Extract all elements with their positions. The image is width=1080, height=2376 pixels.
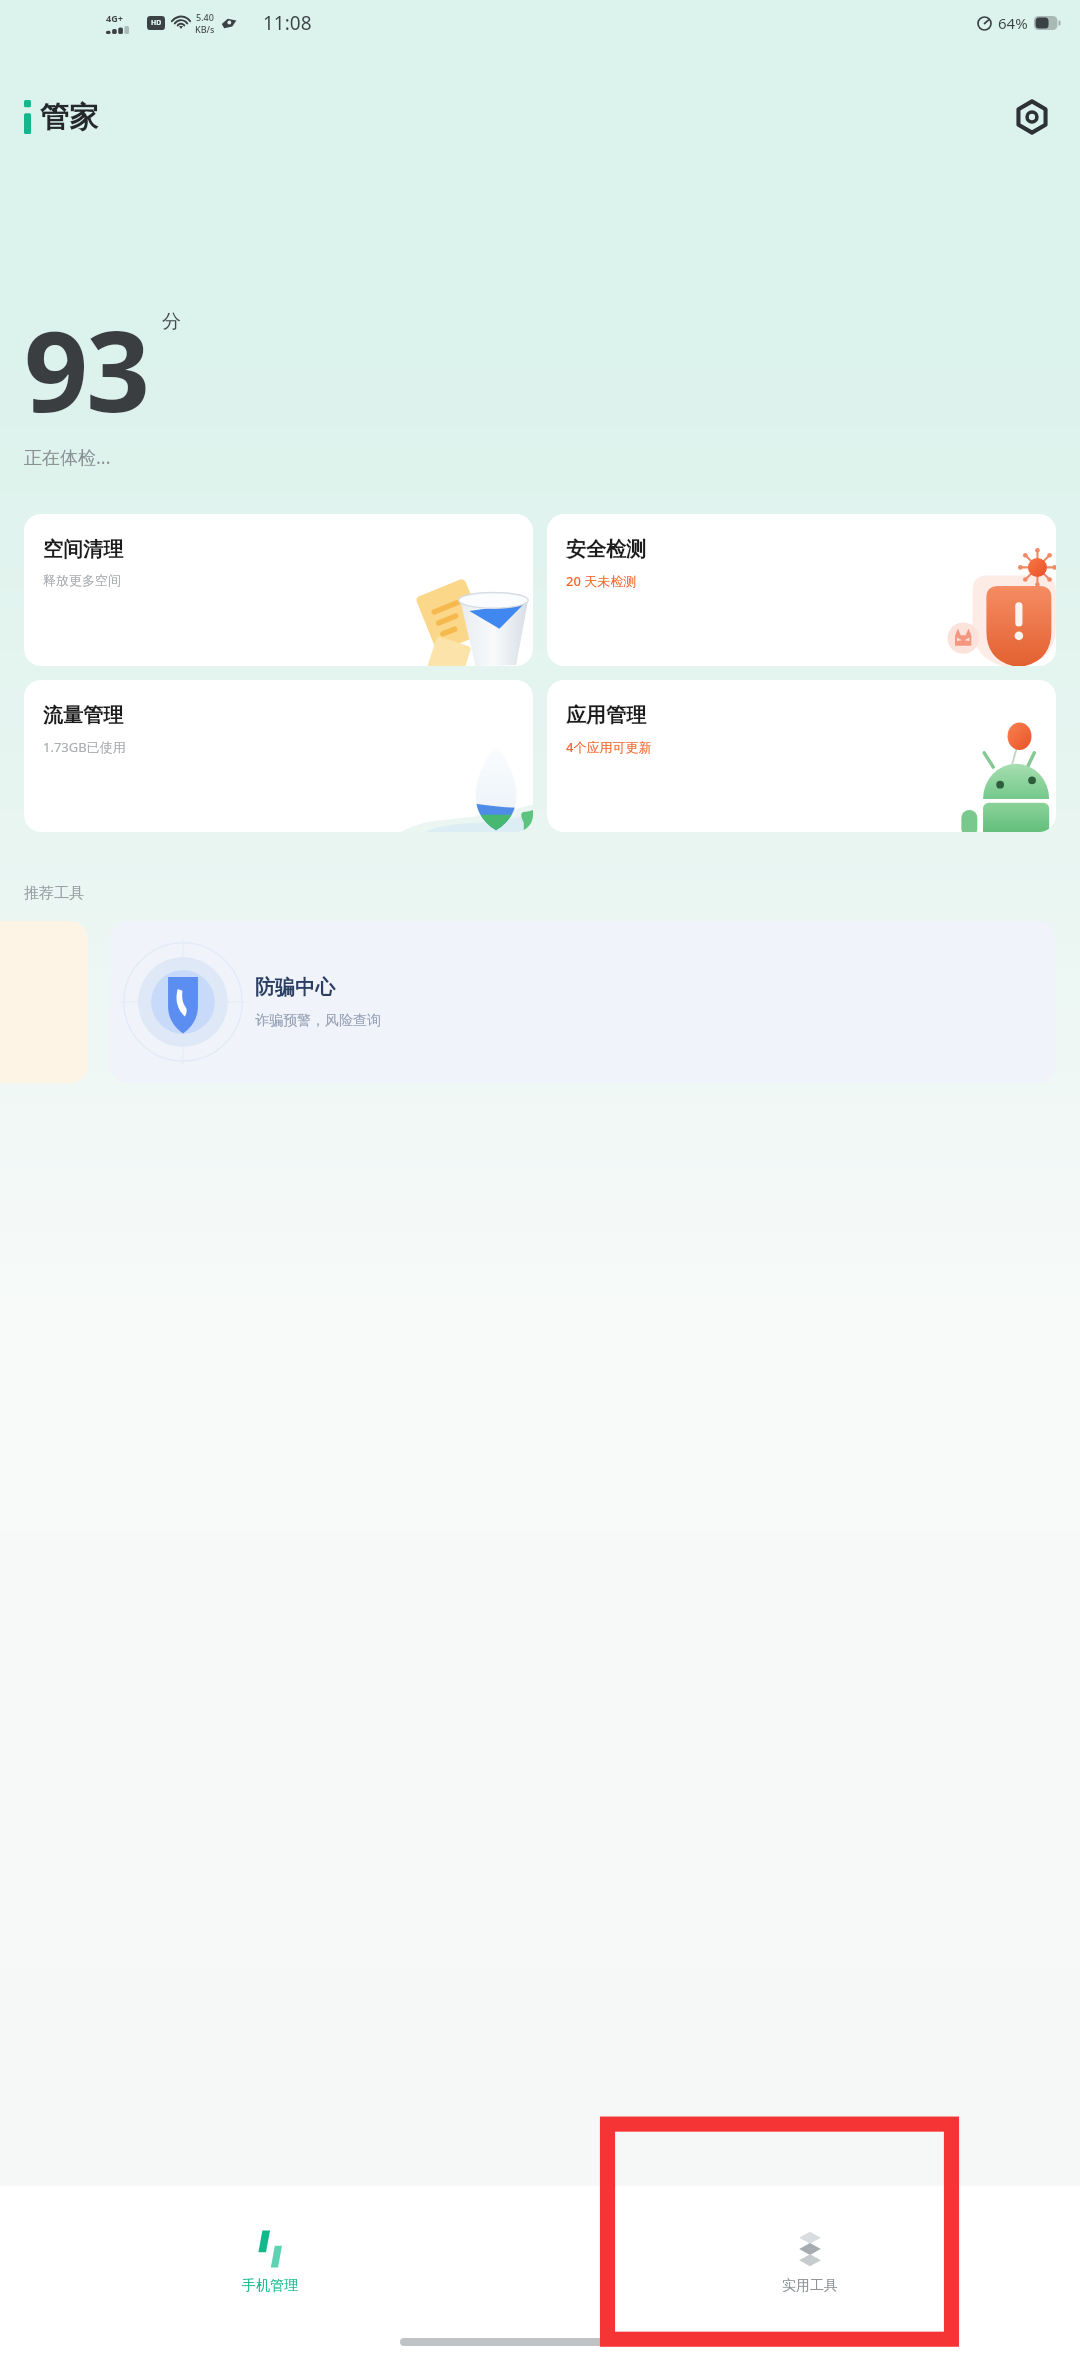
staticText: 64%	[998, 13, 1028, 33]
staticText: 诈骗预警，风险查询	[255, 1012, 381, 1030]
button[interactable]: 防骗中心	[110, 921, 1056, 1083]
staticText: 手机管理	[242, 2277, 298, 2295]
staticText: 安全检测	[566, 537, 646, 562]
button[interactable]: 实用工具	[540, 2186, 1080, 2338]
staticText: 推荐工具	[24, 884, 84, 903]
staticText: 空间清理	[43, 537, 123, 562]
staticText: 93	[24, 292, 149, 445]
staticText: 1.73GB已使用	[43, 738, 126, 756]
staticText: HD	[151, 18, 162, 28]
staticText: 流量管理	[43, 703, 123, 728]
staticText: 正在体检...	[24, 445, 111, 470]
button[interactable]: 流量管理	[24, 680, 533, 832]
button[interactable]: 安全检测	[547, 514, 1056, 666]
staticText: 20 天未检测	[566, 572, 637, 590]
staticText: 分	[162, 310, 181, 334]
staticText: 4G+	[106, 12, 123, 24]
button[interactable]: 手机管理	[0, 2186, 540, 2338]
staticText: 应用管理	[566, 703, 646, 728]
staticText: 释放更多空间	[43, 572, 121, 588]
staticText: 管家	[40, 99, 98, 136]
staticText: 防骗中心	[255, 975, 335, 1000]
staticText: 11:08	[263, 10, 312, 36]
staticText: KB/s	[195, 23, 215, 35]
button[interactable]: 空间清理	[24, 514, 533, 666]
staticText: 实用工具	[782, 2277, 838, 2295]
button[interactable]: Settings	[1008, 93, 1056, 141]
staticText: 5.40	[196, 11, 214, 23]
staticText: 4个应用可更新	[566, 738, 652, 756]
button[interactable]: 应用管理	[547, 680, 1056, 832]
